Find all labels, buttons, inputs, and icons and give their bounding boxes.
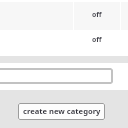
button[interactable] bbox=[0, 68, 113, 84]
button[interactable]: create new category bbox=[18, 103, 105, 120]
staticText: off bbox=[92, 10, 102, 19]
button[interactable] bbox=[0, 2, 128, 30]
staticText: create new category bbox=[23, 106, 101, 116]
staticText: off bbox=[92, 35, 102, 44]
